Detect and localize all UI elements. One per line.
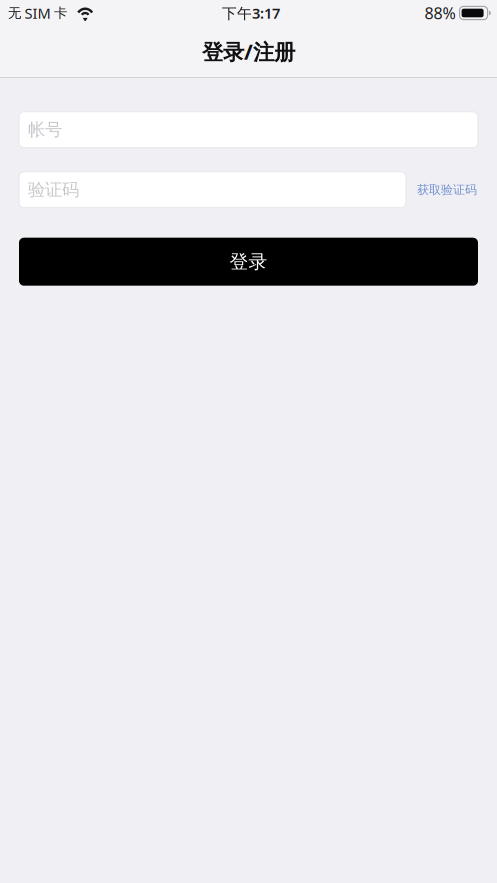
staticText: 88%	[425, 2, 456, 24]
button[interactable]: 帐号	[19, 112, 478, 148]
staticText: 登录/注册	[202, 37, 295, 66]
staticText: 卡	[54, 5, 67, 21]
staticText: 验证码	[28, 179, 79, 200]
staticText: 下午3:17	[222, 3, 280, 23]
button[interactable]: 登录	[19, 238, 478, 286]
button[interactable]: 获取验证码	[406, 172, 478, 208]
staticText: 帐号	[28, 119, 62, 140]
button[interactable]: 验证码	[19, 172, 406, 208]
staticText: SIM	[24, 3, 50, 23]
staticText: 获取验证码	[417, 182, 477, 197]
staticText: 登录	[229, 250, 267, 273]
staticText: 无	[8, 5, 21, 21]
